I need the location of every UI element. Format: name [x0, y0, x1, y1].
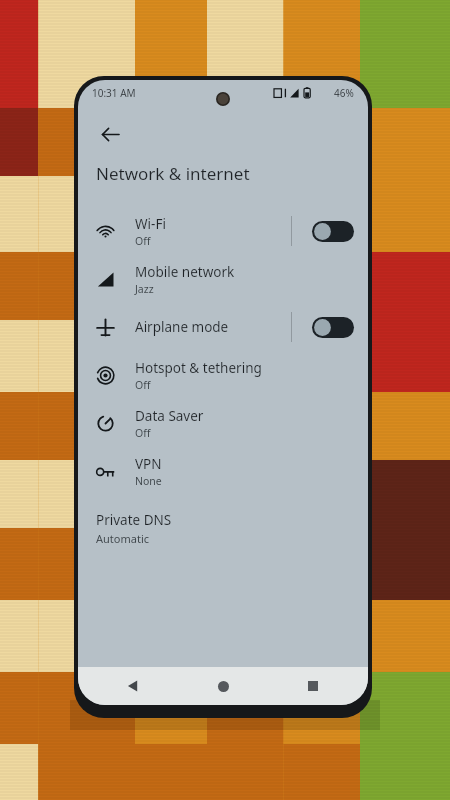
button[interactable]: Hotspot & tethering: [78, 351, 368, 399]
staticText: VPN: [135, 455, 162, 473]
staticText: Data Saver: [135, 407, 204, 425]
staticText: Network & internet: [96, 162, 250, 185]
staticText: Hotspot & tethering: [135, 359, 262, 377]
button[interactable]: Airplane mode toggle: [312, 317, 354, 338]
staticText: Off: [135, 234, 151, 248]
staticText: Jazz: [135, 282, 154, 296]
staticText: 46%: [334, 86, 354, 100]
button[interactable]: Mobile network: [78, 255, 368, 303]
staticText: Mobile network: [135, 263, 235, 281]
button[interactable]: Back: [116, 669, 150, 703]
staticText: Private DNS: [96, 511, 172, 529]
button[interactable]: Back: [90, 114, 130, 154]
button[interactable]: Airplane mode: [78, 303, 368, 351]
staticText: Off: [135, 378, 151, 392]
staticText: Airplane mode: [135, 318, 229, 336]
staticText: Wi-Fi: [135, 215, 166, 233]
staticText: None: [135, 474, 162, 488]
staticText: Off: [135, 426, 151, 440]
button[interactable]: VPN: [78, 447, 368, 495]
button[interactable]: Home: [206, 669, 240, 703]
button[interactable]: Recents: [296, 669, 330, 703]
button[interactable]: Data Saver: [78, 399, 368, 447]
button[interactable]: Private DNS: [78, 507, 368, 554]
staticText: Automatic: [96, 531, 149, 546]
button[interactable]: Wi-Fi toggle: [312, 221, 354, 242]
button[interactable]: Wi-Fi: [78, 207, 368, 255]
staticText: 10:31 AM: [92, 86, 136, 100]
